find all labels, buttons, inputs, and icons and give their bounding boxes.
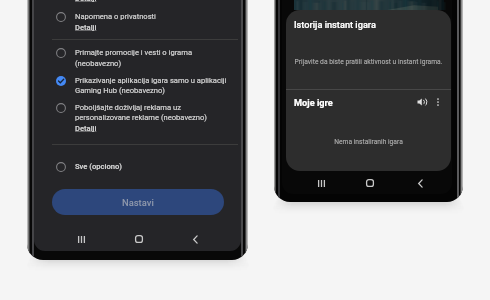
button[interactable]: Nastavi [52,189,224,215]
button[interactable]: Recent apps [72,230,90,248]
staticText: (neobavezno) [75,59,122,68]
staticText: Nastavi [122,197,154,208]
button[interactable]: Selected [53,73,69,89]
staticText: personalizovane reklame (neobavezno) [75,113,207,122]
button[interactable] [52,46,238,70]
button[interactable] [52,74,238,98]
button[interactable]: More options [431,95,445,109]
button[interactable]: Recent apps [312,174,330,192]
staticText: Prijavite da biste pratili aktivnost u i… [286,58,451,66]
button[interactable] [52,10,238,35]
button[interactable]: Back [186,230,204,248]
button[interactable]: Not selected [53,100,69,116]
staticText: Poboljšajte doživljaj reklama uz [75,103,181,112]
button[interactable]: Back [411,174,429,192]
staticText: Detalji [75,124,97,133]
staticText: Napomena o privatnosti [75,12,156,21]
button[interactable]: Home [130,230,148,248]
staticText: Sve (opciono) [75,162,122,171]
button[interactable]: Not selected [53,9,69,25]
staticText: Istorija instant igara [294,19,376,30]
staticText: Nema instaliranih igara [286,138,451,146]
staticText: Primajte promocije i vesti o igrama [75,48,193,57]
button[interactable] [52,101,238,135]
button[interactable]: Home [361,174,379,192]
button[interactable]: Not selected [53,159,69,175]
button[interactable]: Sound [414,94,430,110]
staticText: Detalji [75,23,97,32]
button[interactable]: Not selected [53,45,69,61]
staticText: Prikazivanje aplikacija igara samo u apl… [75,76,227,85]
staticText: Moje igre [294,97,333,108]
staticText: Gaming Hub (neobavezno) [75,86,165,95]
button[interactable] [52,160,238,175]
staticText: Detalji [75,0,97,3]
